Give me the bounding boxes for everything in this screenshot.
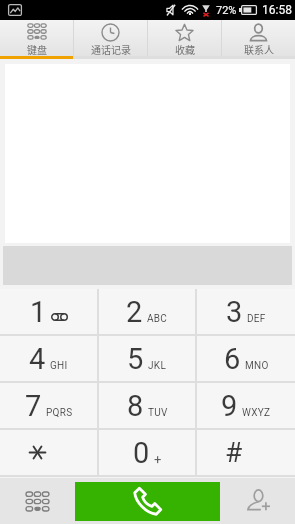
staticText: 2 (126, 295, 143, 329)
button[interactable]: 2 (99, 289, 195, 334)
button[interactable]: 收藏 (148, 20, 221, 56)
button[interactable]: 0 (99, 430, 195, 475)
staticText: 16:58 (262, 3, 292, 17)
staticText: 1 (30, 295, 47, 329)
staticText: + (154, 452, 162, 467)
staticText: 4 (29, 342, 46, 376)
staticText: ABC (147, 313, 168, 325)
button[interactable] (0, 430, 97, 475)
staticText: TUV (148, 407, 168, 419)
staticText: DEF (247, 313, 266, 325)
staticText: 键盘 (27, 42, 47, 56)
button[interactable]: 9 (197, 383, 295, 428)
button[interactable]: 7 (0, 383, 97, 428)
staticText: PQRS (46, 407, 73, 419)
button[interactable]: 联系人 (222, 20, 295, 56)
button[interactable]: 3 (197, 289, 295, 334)
button[interactable]: 通话记录 (74, 20, 147, 56)
staticText: 通话记录 (91, 42, 131, 56)
button[interactable]: 键盘 (0, 20, 73, 56)
button[interactable]: Call (75, 482, 220, 521)
button[interactable]: 6 (197, 336, 295, 381)
button[interactable]: Keypad (0, 478, 75, 524)
staticText: 72% (216, 4, 237, 17)
staticText: GHI (50, 360, 68, 372)
staticText: 0 (133, 436, 150, 470)
staticText: 7 (25, 389, 42, 423)
button[interactable]: # (197, 430, 295, 475)
button[interactable]: 5 (99, 336, 195, 381)
button[interactable]: 4 (0, 336, 97, 381)
staticText: 5 (127, 342, 144, 376)
staticText: 3 (226, 295, 243, 329)
staticText: 收藏 (175, 42, 195, 56)
staticText: 9 (221, 389, 238, 423)
button[interactable]: 8 (99, 383, 195, 428)
staticText: MNO (245, 360, 269, 372)
staticText: JKL (148, 360, 167, 372)
staticText: 6 (224, 342, 241, 376)
staticText: 联系人 (244, 42, 274, 56)
button[interactable]: 1 (0, 289, 97, 334)
staticText: 8 (127, 389, 144, 423)
staticText: WXYZ (242, 407, 271, 419)
staticText: # (225, 436, 243, 469)
button[interactable]: Add contact (220, 478, 295, 524)
